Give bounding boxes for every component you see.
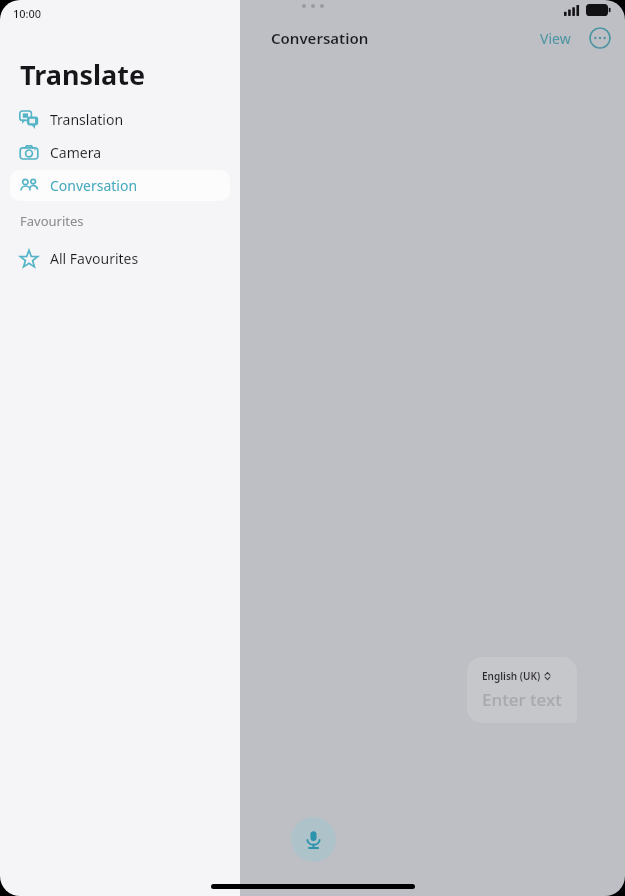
staticText: View <box>540 29 571 48</box>
staticText: English (UK) <box>482 669 541 683</box>
staticText: Translate <box>20 56 146 93</box>
button[interactable]: Camera <box>10 137 230 168</box>
staticText: Favourites <box>20 212 84 230</box>
staticText: Conversation <box>50 176 138 195</box>
button[interactable]: All Favourites <box>10 243 230 274</box>
staticText: Conversation <box>271 28 369 48</box>
staticText: 10:00 <box>13 6 42 21</box>
button[interactable]: English (UK) <box>467 657 577 723</box>
button[interactable]: More options <box>589 27 611 49</box>
button[interactable]: Translation <box>10 104 230 135</box>
staticText: Translation <box>50 110 124 129</box>
button[interactable]: View <box>536 26 575 51</box>
staticText: All Favourites <box>50 249 139 268</box>
button[interactable]: Conversation <box>10 170 230 201</box>
staticText: Enter text <box>482 688 562 711</box>
staticText: Camera <box>50 143 102 162</box>
button[interactable]: Start listening <box>291 817 336 862</box>
